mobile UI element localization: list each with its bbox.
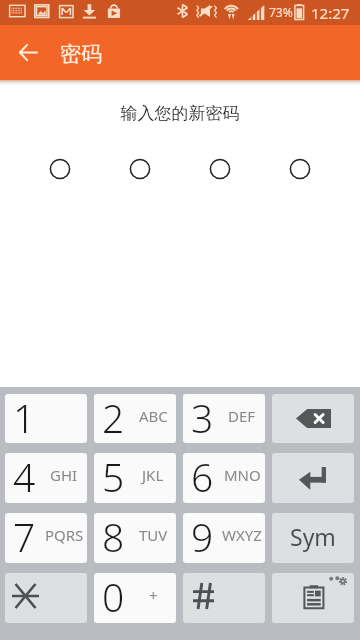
staticText: DEF (228, 406, 256, 426)
staticText: 12:27 (311, 3, 350, 23)
button[interactable]: Back (0, 25, 56, 80)
button[interactable]: Hash (183, 573, 265, 623)
button[interactable]: 6 (183, 453, 265, 503)
button[interactable]: 3 (183, 394, 265, 443)
button[interactable]: 4 (5, 453, 87, 503)
staticText: 密码 (60, 41, 102, 67)
staticText: 1 (13, 394, 36, 440)
button[interactable]: 9 (183, 513, 265, 563)
staticText: 4 (13, 453, 36, 500)
button[interactable]: 8 (94, 513, 176, 563)
staticText: 9 (191, 513, 214, 560)
staticText: 输入您的新密码 (0, 103, 360, 124)
staticText: WXYZ (222, 525, 262, 545)
button[interactable]: 7 (5, 513, 87, 563)
button[interactable]: 0 (94, 573, 176, 623)
button[interactable]: Clipboard (272, 573, 354, 623)
staticText: MNO (224, 465, 261, 485)
staticText: + (149, 585, 158, 605)
staticText: 0 (102, 573, 125, 620)
staticText: JKL (142, 465, 164, 485)
staticText: ABC (139, 406, 168, 426)
staticText: 6 (191, 453, 214, 500)
staticText: TUV (139, 525, 168, 545)
button[interactable]: 5 (94, 453, 176, 503)
staticText: GHI (50, 465, 78, 485)
button[interactable]: Sym (272, 513, 354, 563)
staticText: 5 (102, 453, 125, 500)
button[interactable]: 2 (94, 394, 176, 443)
button[interactable]: 1 (5, 394, 87, 443)
staticText: 8 (102, 513, 125, 560)
button[interactable]: Enter (272, 453, 354, 503)
button[interactable]: Star (5, 573, 87, 623)
button[interactable]: Backspace (272, 394, 354, 443)
staticText: Sym (290, 521, 336, 552)
staticText: 2 (102, 394, 125, 440)
staticText: 73% (269, 4, 293, 20)
staticText: 3 (191, 394, 214, 440)
staticText: 7 (13, 513, 36, 560)
staticText: PQRS (45, 525, 84, 545)
